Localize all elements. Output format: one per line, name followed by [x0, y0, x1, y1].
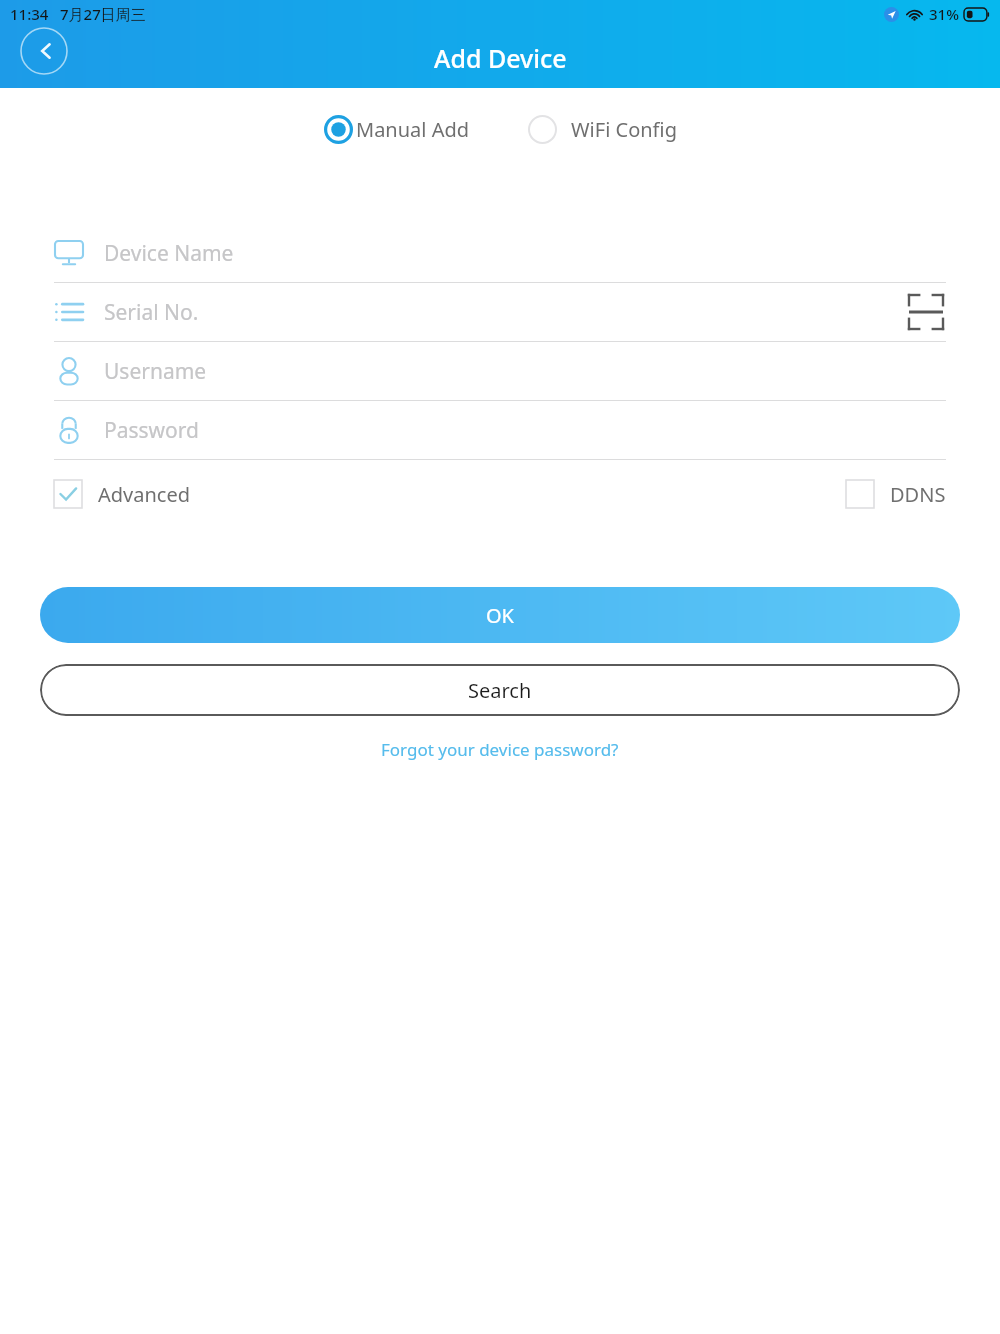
button[interactable]: Serial No.: [54, 283, 946, 341]
button[interactable]: Password: [54, 401, 946, 459]
staticText: Advanced: [98, 481, 190, 508]
button[interactable]: Manual Add: [320, 109, 474, 150]
button[interactable]: Search: [40, 664, 960, 716]
button[interactable]: Back: [20, 27, 68, 75]
button[interactable]: Forgot your device password?: [0, 738, 1000, 761]
staticText: 11:34: [10, 4, 49, 24]
staticText: Device Name: [104, 239, 234, 268]
button[interactable]: WiFi Config: [524, 109, 681, 150]
staticText: Search: [468, 677, 532, 704]
staticText: Password: [104, 416, 199, 445]
staticText: Add Device: [434, 41, 567, 75]
staticText: Username: [104, 357, 207, 386]
staticText: 7月27日周三: [60, 4, 146, 24]
staticText: WiFi Config: [571, 116, 677, 143]
staticText: Serial No.: [104, 298, 199, 327]
button[interactable]: Advanced: [54, 480, 190, 508]
button[interactable]: OK: [40, 587, 960, 643]
staticText: 31%: [929, 4, 959, 24]
staticText: Forgot your device password?: [381, 738, 619, 761]
staticText: Manual Add: [356, 116, 470, 143]
staticText: OK: [486, 602, 514, 629]
staticText: DDNS: [890, 481, 946, 508]
button[interactable]: DDNS: [846, 480, 946, 508]
button[interactable]: Scan QR code: [906, 292, 946, 332]
button[interactable]: Username: [54, 342, 946, 400]
button[interactable]: Device Name: [54, 224, 946, 282]
